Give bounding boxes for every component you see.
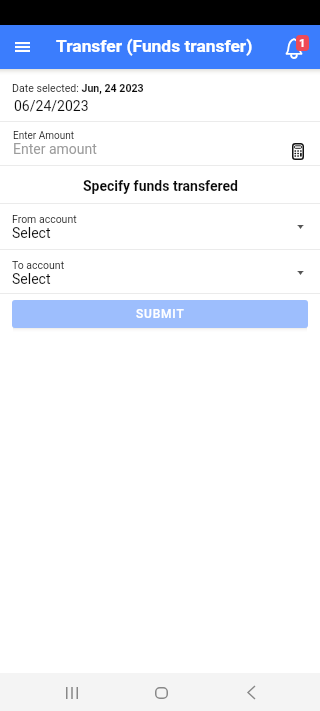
staticText: Date selected: Jun, 24 2023 <box>12 82 144 94</box>
staticText: Enter amount <box>13 141 97 157</box>
button[interactable]: Notifications <box>281 32 313 62</box>
staticText: From account <box>12 213 77 225</box>
button[interactable]: Open navigation menu <box>8 30 36 64</box>
staticText: Transfer (Funds transfer) <box>56 36 253 56</box>
button[interactable]: From account <box>0 203 320 249</box>
button[interactable]: Back <box>239 680 264 705</box>
button[interactable]: To account <box>0 249 320 293</box>
staticText: 1 <box>299 37 306 50</box>
button[interactable]: Open calculator <box>286 136 310 166</box>
button[interactable]: Recent apps <box>59 680 84 705</box>
button[interactable]: SUBMIT <box>12 300 308 328</box>
staticText: Select <box>12 225 51 241</box>
staticText: Select <box>12 271 51 287</box>
staticText: Specify funds transfered <box>83 178 238 194</box>
staticText: To account <box>12 259 65 271</box>
staticText: SUBMIT <box>136 307 185 321</box>
staticText: 06/24/2023 <box>14 98 89 114</box>
staticText: Enter Amount <box>13 130 74 142</box>
button[interactable]: Home <box>149 680 174 705</box>
